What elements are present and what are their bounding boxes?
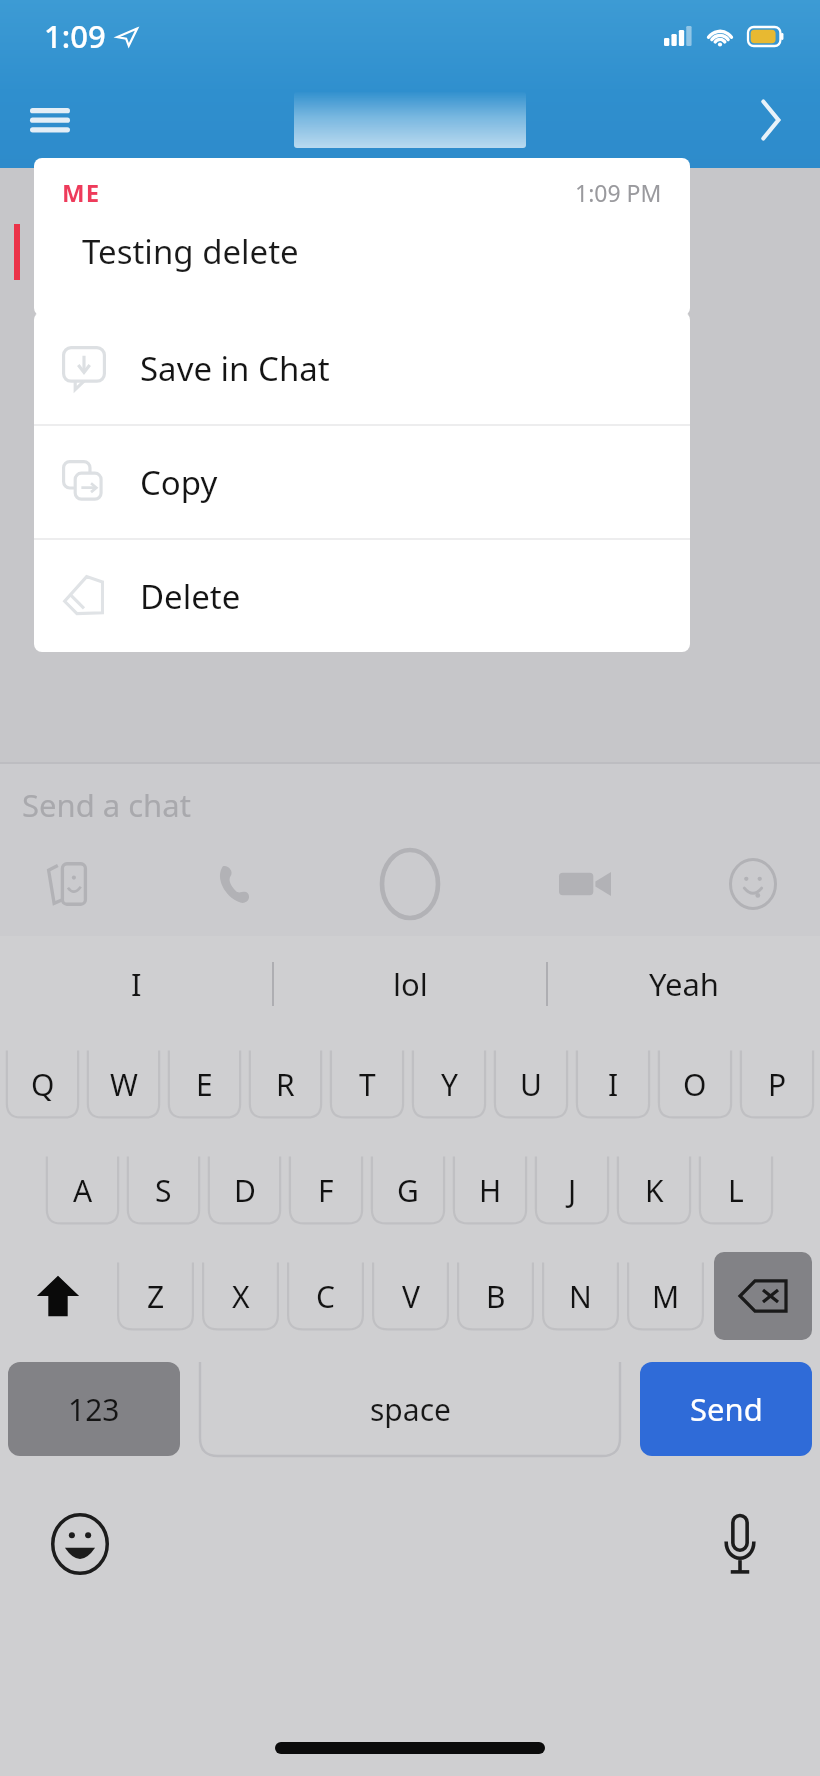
staticText: N (569, 1276, 592, 1317)
button[interactable]: Z (113, 1252, 198, 1340)
button[interactable]: G (367, 1146, 449, 1234)
button[interactable]: E (164, 1040, 245, 1128)
staticText: H (479, 1170, 502, 1211)
staticText: space (370, 1389, 451, 1430)
staticText: M (652, 1276, 680, 1317)
button[interactable]: Y (408, 1040, 490, 1128)
button[interactable]: W (83, 1040, 164, 1128)
staticText: I (131, 963, 142, 1005)
staticText: Yeah (649, 963, 720, 1005)
button[interactable]: 123 (8, 1362, 180, 1456)
button[interactable]: M (623, 1252, 708, 1340)
staticText: B (486, 1276, 506, 1317)
button[interactable]: Next (742, 92, 798, 148)
button[interactable]: Save in Chat (34, 312, 690, 424)
button[interactable]: Stickers (30, 847, 104, 921)
button[interactable]: Menu (22, 92, 78, 148)
staticText: T (359, 1064, 376, 1105)
button[interactable]: C (283, 1252, 368, 1340)
button[interactable]: K (613, 1146, 695, 1234)
button[interactable]: Shift (2, 1252, 113, 1340)
button[interactable]: D (204, 1146, 285, 1234)
staticText: Send a chat (22, 784, 191, 826)
staticText: C (316, 1276, 335, 1317)
staticText: W (110, 1064, 138, 1105)
button[interactable]: Delete (34, 540, 690, 652)
staticText: L (728, 1170, 744, 1211)
button[interactable]: Video call (548, 847, 622, 921)
staticText: R (276, 1064, 295, 1105)
button[interactable]: T (326, 1040, 408, 1128)
staticText: E (196, 1064, 213, 1105)
button[interactable]: A (42, 1146, 123, 1234)
button[interactable]: J (531, 1146, 613, 1234)
staticText: G (397, 1170, 419, 1211)
button[interactable]: P (736, 1040, 818, 1128)
button[interactable]: X (198, 1252, 283, 1340)
button[interactable]: space (200, 1362, 620, 1456)
button[interactable]: lol (274, 936, 546, 1032)
button[interactable]: F (285, 1146, 367, 1234)
staticText: U (520, 1064, 542, 1105)
staticText: J (568, 1170, 577, 1211)
staticText: Send (690, 1388, 763, 1430)
staticText: 123 (68, 1389, 120, 1430)
staticText: Testing delete (82, 229, 299, 274)
staticText: Y (441, 1064, 458, 1105)
button[interactable]: ME (34, 158, 690, 316)
staticText: Z (147, 1276, 165, 1317)
staticText: 1:09 (44, 15, 106, 57)
button[interactable]: L (695, 1146, 777, 1234)
staticText: lol (393, 963, 428, 1005)
staticText: O (683, 1064, 707, 1105)
staticText: I (608, 1064, 619, 1105)
staticText: Save in Chat (140, 346, 330, 391)
button[interactable]: Copy (34, 426, 690, 538)
staticText: A (73, 1170, 93, 1211)
staticText: P (768, 1064, 787, 1105)
staticText: 1:09 PM (575, 177, 662, 208)
staticText: S (155, 1170, 172, 1211)
button[interactable]: Call (198, 847, 272, 921)
button[interactable]: R (245, 1040, 326, 1128)
button[interactable]: Backspace (714, 1252, 812, 1340)
button[interactable]: S (123, 1146, 204, 1234)
staticText: Q (31, 1064, 55, 1105)
button[interactable]: Camera (366, 840, 454, 928)
button[interactable]: Send (640, 1362, 812, 1456)
staticText: X (232, 1276, 250, 1317)
staticText: D (234, 1170, 256, 1211)
staticText: Delete (140, 574, 241, 619)
button[interactable]: U (490, 1040, 572, 1128)
button[interactable]: N (538, 1252, 623, 1340)
button[interactable]: H (449, 1146, 531, 1234)
button[interactable]: I (0, 936, 272, 1032)
button[interactable]: Emoji keyboard (44, 1508, 116, 1580)
button[interactable]: Emoji (716, 847, 790, 921)
button[interactable]: I (572, 1040, 654, 1128)
button[interactable]: B (453, 1252, 538, 1340)
staticText: K (645, 1170, 664, 1211)
button[interactable]: Yeah (548, 936, 820, 1032)
staticText: ME (62, 176, 101, 209)
button[interactable]: Voice input (704, 1508, 776, 1580)
staticText: V (402, 1276, 420, 1317)
button[interactable]: V (368, 1252, 453, 1340)
button[interactable]: Q (2, 1040, 83, 1128)
staticText: Copy (140, 460, 218, 505)
button[interactable]: O (654, 1040, 736, 1128)
staticText: F (318, 1170, 334, 1211)
